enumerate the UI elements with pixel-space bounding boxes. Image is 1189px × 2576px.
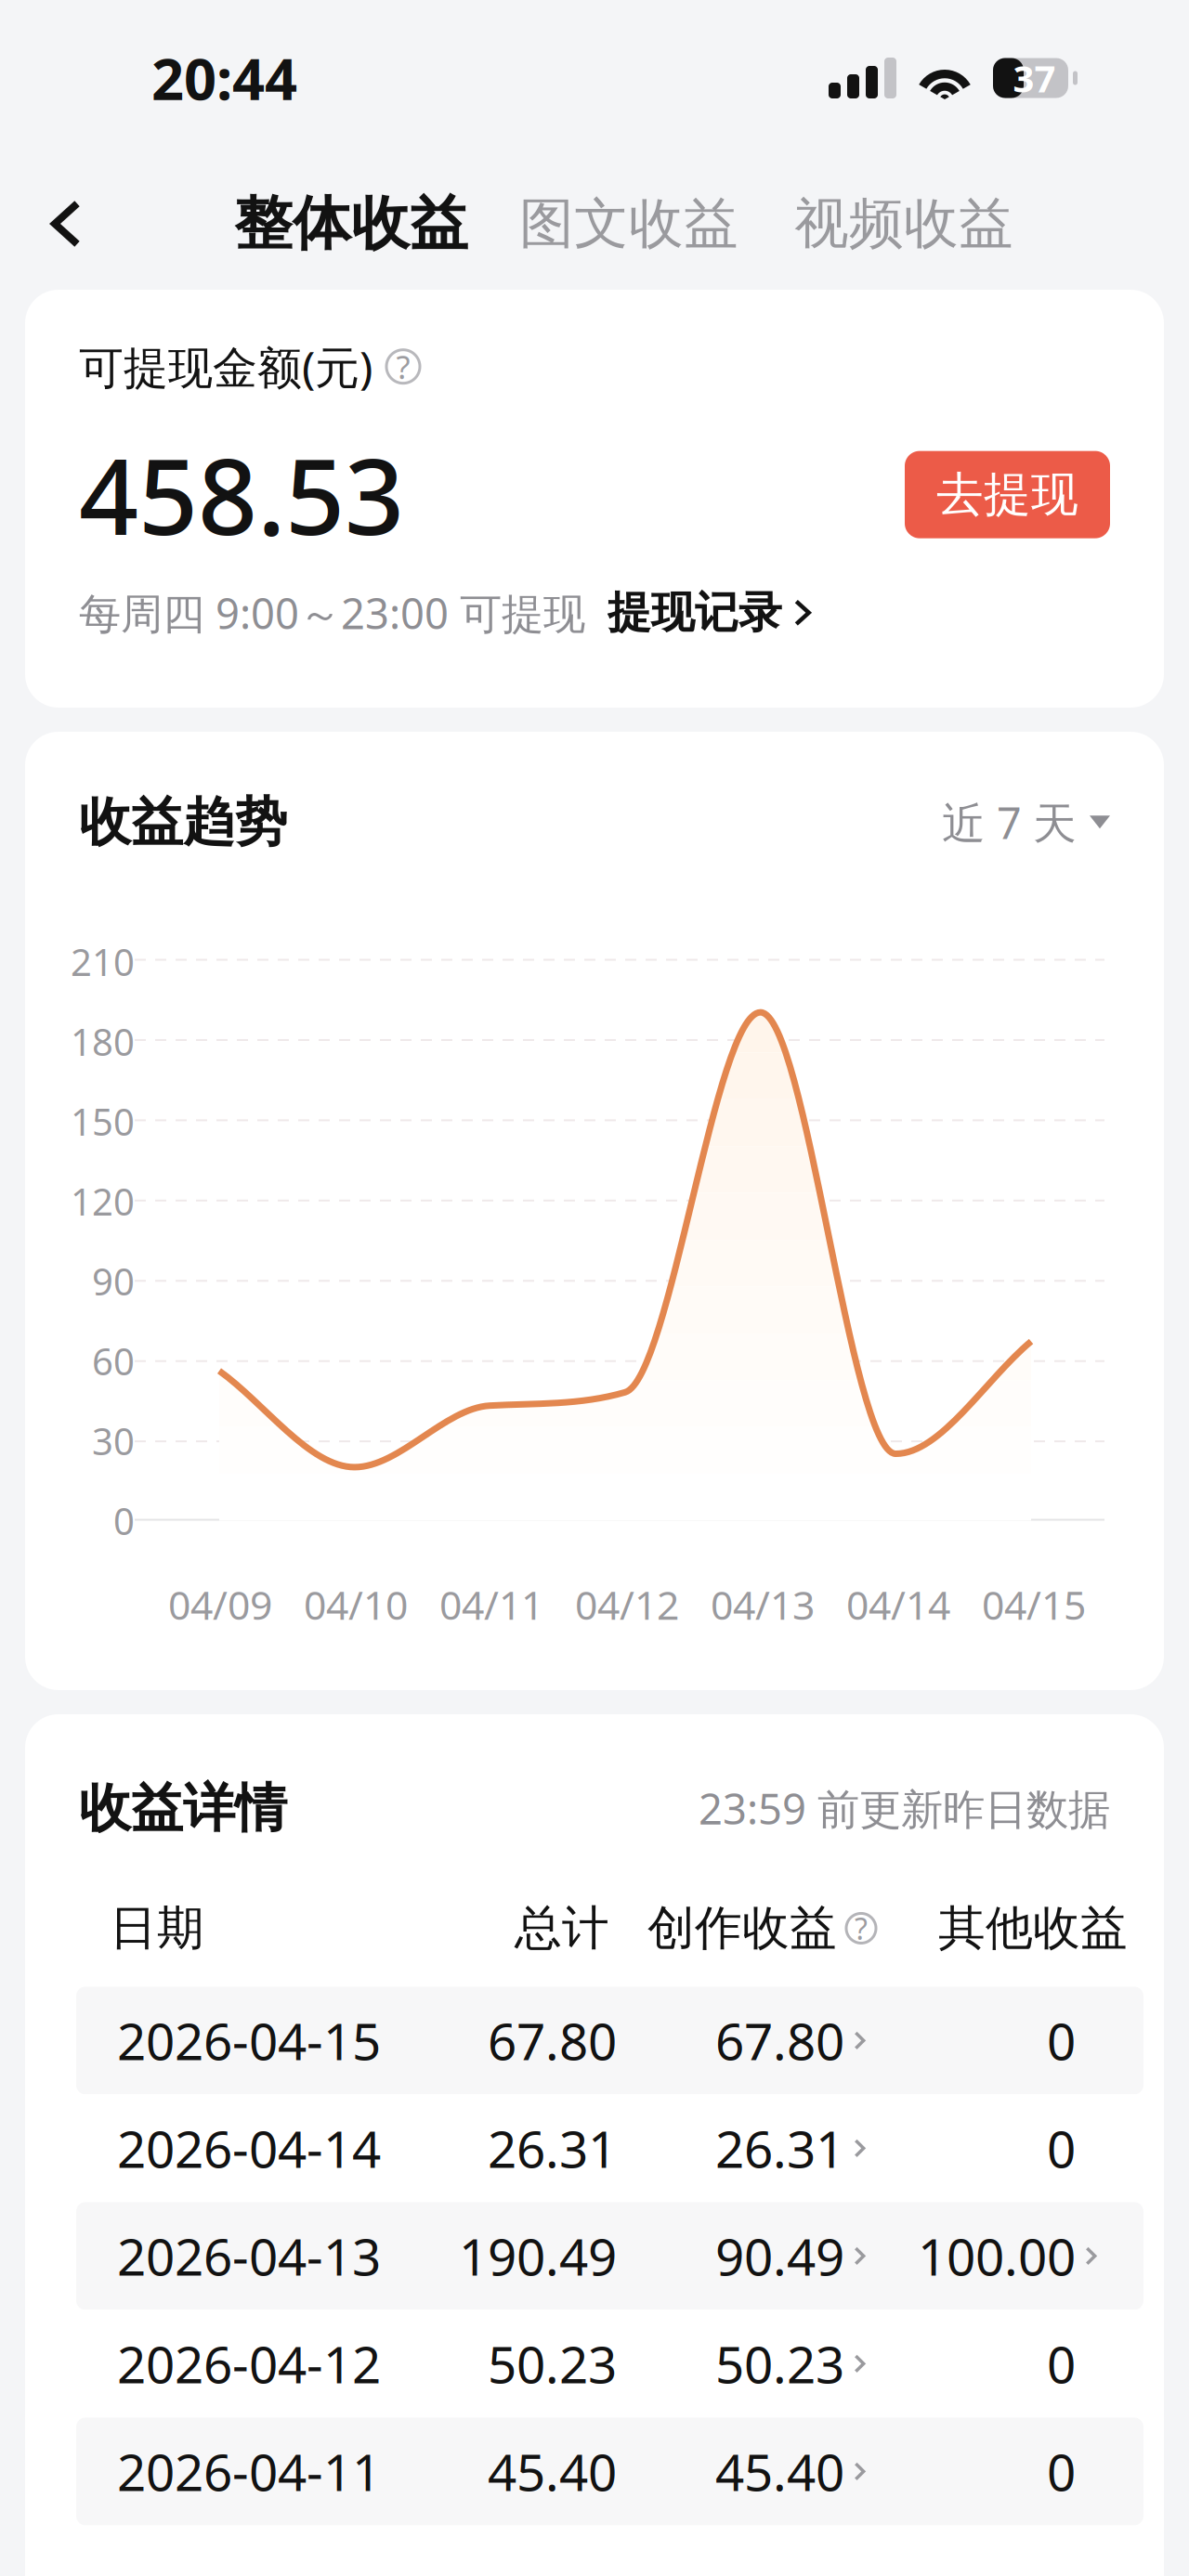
staticText: 45.40 [488, 2437, 617, 2506]
staticText: 458.53 [79, 424, 404, 565]
button[interactable]: 整体收益 [234, 187, 468, 260]
button[interactable]: 2026-04-14 [76, 2094, 1143, 2202]
staticText: 视频收益 [794, 189, 1013, 258]
staticText: ? [396, 345, 410, 388]
staticText: 创作收益 [647, 1899, 837, 1958]
staticText: 50.23 [715, 2329, 844, 2398]
staticText: 04/10 [304, 1577, 408, 1631]
staticText: 26.31 [715, 2114, 844, 2183]
staticText: 67.80 [488, 2006, 617, 2075]
staticText: 20:44 [151, 39, 297, 117]
staticText: 180 [71, 1016, 135, 1067]
staticText: 提现记录 [608, 585, 782, 640]
staticText: 37 [1013, 53, 1056, 103]
staticText: 60 [92, 1336, 135, 1386]
staticText: 2026-04-11 [117, 2437, 381, 2506]
staticText: 26.31 [488, 2114, 617, 2183]
staticText: 图文收益 [519, 189, 738, 258]
staticText: 100.00 [918, 2221, 1076, 2291]
button[interactable]: 图文收益 [519, 189, 738, 258]
staticText: 67.80 [715, 2006, 844, 2075]
button[interactable]: Back [0, 173, 97, 275]
staticText: 90 [92, 1256, 135, 1306]
staticText: 90.49 [715, 2221, 844, 2291]
button[interactable]: 2026-04-12 [76, 2310, 1143, 2418]
staticText: ? [855, 1908, 868, 1949]
staticText: 2026-04-14 [117, 2114, 381, 2183]
staticText: 2026-04-13 [117, 2221, 381, 2291]
staticText: 2026-04-12 [117, 2329, 381, 2398]
button[interactable]: 提现记录 [608, 585, 814, 640]
staticText: 可提现金额(元) [79, 336, 372, 397]
button[interactable]: 2026-04-13 [76, 2202, 1143, 2310]
staticText: 收益详情 [79, 1776, 287, 1841]
staticText: 45.40 [715, 2437, 844, 2506]
button[interactable]: 说明 [385, 349, 421, 384]
staticText: 日期 [110, 1899, 204, 1958]
button[interactable]: 去提现 [905, 451, 1110, 538]
staticText: 2026-04-15 [117, 2006, 381, 2075]
staticText: 50.23 [488, 2329, 617, 2398]
staticText: 04/13 [711, 1577, 815, 1631]
staticText: 04/12 [575, 1577, 679, 1631]
staticText: 30 [92, 1415, 135, 1466]
staticText: 其他收益 [938, 1899, 1128, 1958]
staticText: 0 [1047, 2114, 1076, 2183]
staticText: 04/15 [982, 1577, 1086, 1631]
staticText: 150 [71, 1096, 135, 1147]
staticText: 0 [1047, 2329, 1076, 2398]
staticText: 近 7 天 [942, 793, 1077, 852]
button[interactable]: 视频收益 [794, 189, 1013, 258]
staticText: 04/14 [846, 1577, 950, 1631]
staticText: 04/11 [439, 1577, 543, 1631]
staticText: 0 [113, 1495, 135, 1546]
staticText: 210 [71, 936, 135, 987]
button[interactable]: 2026-04-15 [76, 1987, 1143, 2094]
button[interactable]: 2026-04-11 [76, 2418, 1143, 2525]
staticText: 190.49 [459, 2221, 617, 2291]
staticText: 23:59 前更新昨日数据 [699, 1780, 1110, 1837]
button[interactable]: 创作收益说明 [837, 1912, 877, 1944]
staticText: 0 [1047, 2006, 1076, 2075]
staticText: 每周四 9:00～23:00 可提现 [79, 584, 585, 641]
staticText: 120 [71, 1176, 135, 1227]
button[interactable]: 近 7 天 [942, 793, 1110, 852]
staticText: 总计 [515, 1899, 609, 1958]
staticText: 收益趋势 [79, 789, 287, 855]
staticText: 去提现 [936, 465, 1078, 524]
staticText: 整体收益 [234, 187, 468, 260]
staticText: 0 [1047, 2437, 1076, 2506]
staticText: 04/09 [168, 1577, 272, 1631]
